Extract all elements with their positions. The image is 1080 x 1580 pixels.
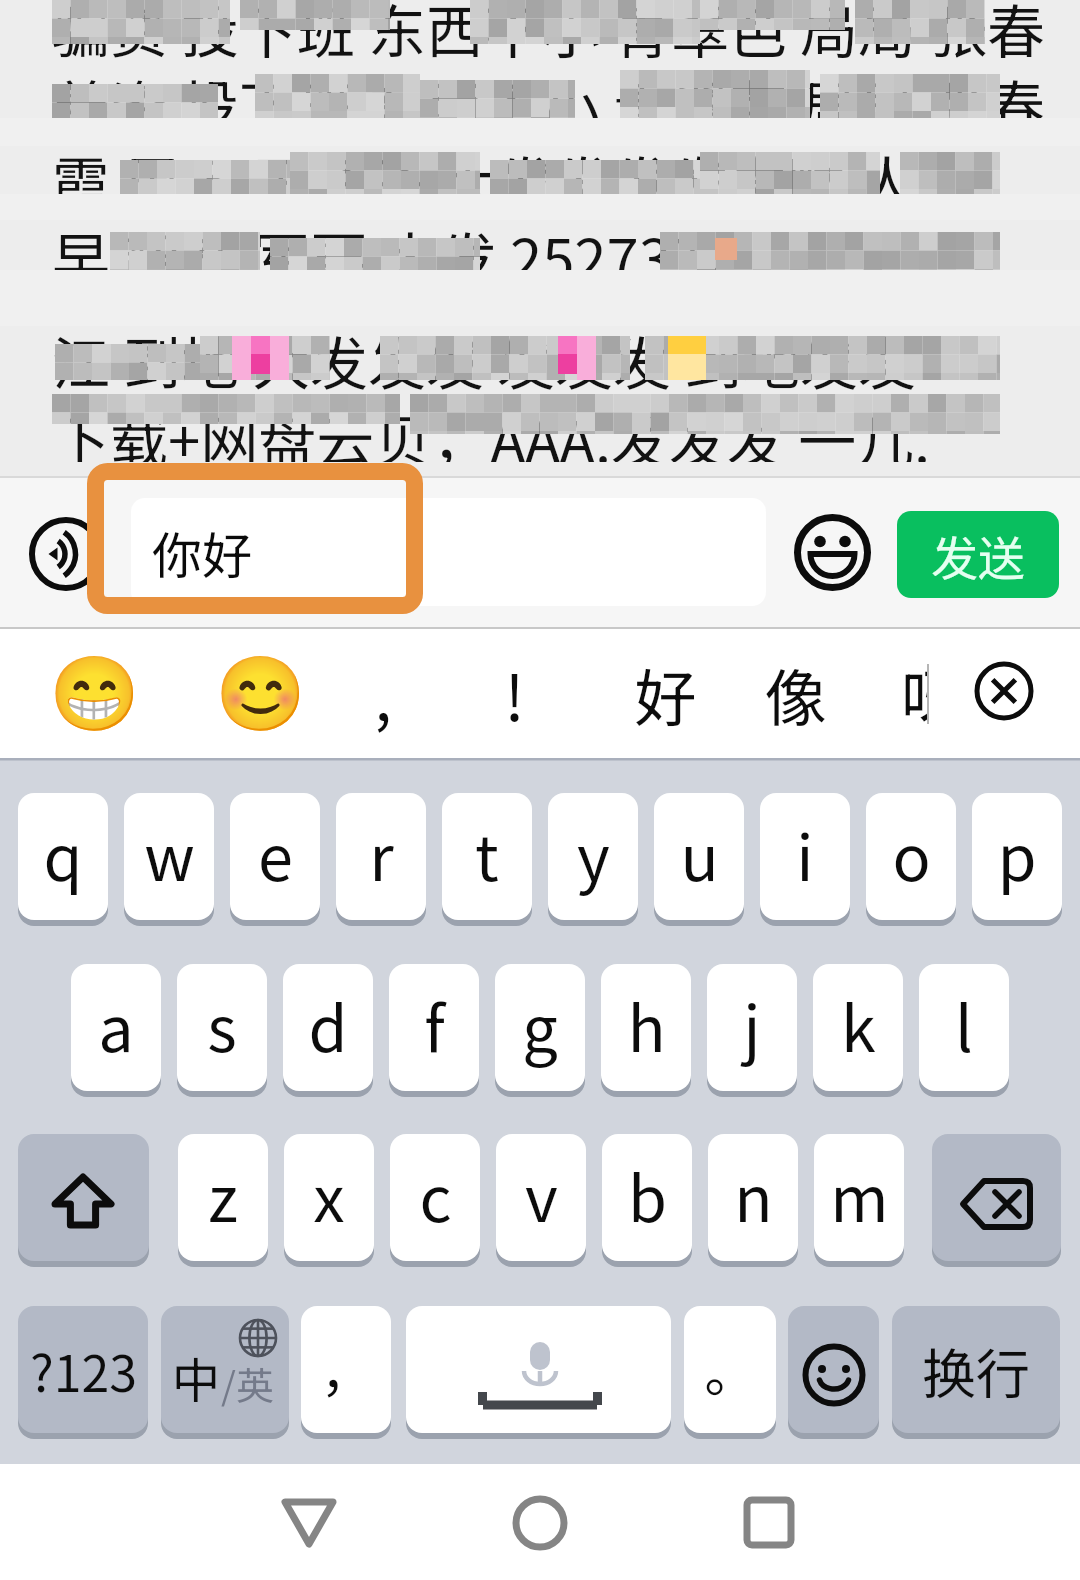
staticText: s [207, 979, 237, 1070]
staticText: y [577, 808, 610, 899]
button[interactable]: 呀 [901, 629, 929, 758]
button[interactable]: a [71, 964, 161, 1098]
button[interactable]: l [919, 964, 1009, 1098]
button[interactable]: m [814, 1134, 904, 1268]
button[interactable]: 像 [725, 629, 865, 758]
staticText: f [424, 979, 445, 1070]
staticText: j [743, 979, 761, 1070]
button[interactable]: 😊 [190, 629, 330, 758]
staticText: 骗资 投下班 东西不小 青翠芭 局局 张春 [52, 0, 1045, 70]
staticText: o [892, 808, 931, 899]
staticText: 发送 [931, 521, 1025, 589]
button[interactable]: t [442, 793, 532, 927]
button[interactable]: Shift [18, 1134, 149, 1268]
button[interactable]: g [495, 964, 585, 1098]
staticText: 。 [704, 1332, 757, 1407]
staticText: a [98, 979, 134, 1070]
staticText: p [997, 808, 1037, 899]
button[interactable]: ! [444, 629, 584, 758]
button[interactable]: c [390, 1134, 480, 1268]
staticText: t [475, 808, 499, 899]
staticText: 像 [764, 649, 827, 739]
staticText: 😁 [49, 651, 140, 737]
staticText: , [374, 649, 392, 739]
staticText: /英 [221, 1356, 274, 1411]
staticText: l [955, 979, 973, 1070]
staticText: i [796, 808, 814, 899]
staticText: 呀 [901, 649, 929, 739]
staticText: b [628, 1149, 667, 1240]
staticText: ?123 [30, 1334, 137, 1406]
button[interactable]: Close candidates [974, 661, 1034, 721]
button[interactable]: i [760, 793, 850, 927]
button[interactable]: r [336, 793, 426, 927]
button[interactable]: y [548, 793, 638, 927]
staticText: n [734, 1149, 773, 1240]
button[interactable]: w [124, 793, 214, 927]
button[interactable]: Voice input [29, 517, 103, 591]
staticText: w [144, 808, 195, 899]
button[interactable]: ?123 [18, 1306, 148, 1440]
staticText: u [680, 808, 719, 899]
button[interactable]: Space [406, 1306, 671, 1440]
button[interactable]: q [18, 793, 108, 927]
button[interactable]: ， [301, 1306, 391, 1440]
button[interactable]: 😁 [24, 629, 164, 758]
button[interactable]: Backspace [932, 1134, 1061, 1268]
staticText: 换行 [922, 1331, 1030, 1409]
staticText: g [522, 979, 558, 1070]
staticText: h [627, 979, 666, 1070]
button[interactable]: Back [249, 1463, 369, 1580]
staticText: 江 到地 大发发发 发发发 到地发发 [52, 318, 916, 402]
button[interactable]: x [284, 1134, 374, 1268]
button[interactable]: b [602, 1134, 692, 1268]
button[interactable]: Home [480, 1463, 600, 1580]
button[interactable]: 你好 [131, 498, 766, 606]
staticText: 霞 周下 王子子 大发发发发发财 人 [52, 138, 916, 222]
button[interactable]: , [313, 629, 453, 758]
button[interactable]: 发送 [897, 511, 1059, 598]
staticText: r [369, 808, 394, 899]
button[interactable]: z [178, 1134, 268, 1268]
staticText: k [841, 979, 876, 1070]
staticText: q [43, 808, 83, 899]
staticText: x [313, 1149, 345, 1240]
button[interactable]: Recent apps [709, 1463, 829, 1580]
staticText: 善资 投下班 东西不小 青翠芭 局局 张春 [52, 62, 1045, 146]
staticText: c [419, 1149, 452, 1240]
staticText: ! [504, 649, 525, 739]
button[interactable]: Switch language [161, 1306, 289, 1440]
staticText: 中 [172, 1342, 221, 1412]
staticText: 你好 [152, 516, 252, 588]
button[interactable]: j [707, 964, 797, 1098]
button[interactable]: s [177, 964, 267, 1098]
button[interactable]: p [972, 793, 1062, 927]
button[interactable]: n [708, 1134, 798, 1268]
button[interactable]: 。 [684, 1306, 776, 1440]
staticText: ， [320, 1332, 373, 1407]
staticText: z [208, 1149, 238, 1240]
staticText: 😊 [215, 651, 306, 737]
staticText: e [258, 808, 293, 899]
button[interactable]: v [496, 1134, 586, 1268]
button[interactable]: Emoji [794, 514, 871, 591]
button[interactable]: e [230, 793, 320, 927]
staticText: m [830, 1149, 889, 1240]
staticText: 好 [634, 649, 697, 739]
button[interactable]: 好 [595, 629, 735, 758]
staticText: d [308, 979, 348, 1070]
button[interactable]: u [654, 793, 744, 927]
button[interactable]: 换行 [892, 1306, 1060, 1440]
button[interactable]: f [389, 964, 479, 1098]
staticText: 下载+网盘云贝，AAA.发发发 一几. [52, 396, 931, 480]
button[interactable]: k [813, 964, 903, 1098]
button[interactable]: h [601, 964, 691, 1098]
staticText: v [525, 1149, 558, 1240]
button[interactable]: d [283, 964, 373, 1098]
button[interactable]: o [866, 793, 956, 927]
staticText: 早 韶产 军要 大发 252737， [52, 214, 762, 298]
button[interactable]: Emoji keyboard [788, 1306, 879, 1440]
